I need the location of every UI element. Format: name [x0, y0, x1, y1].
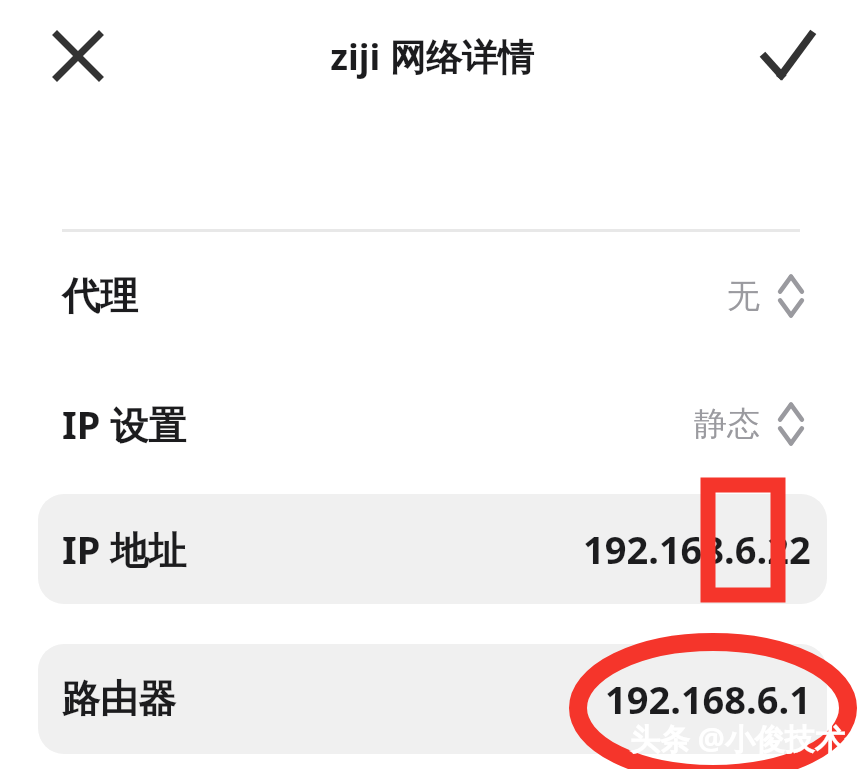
staticText: ziji 网络详情 [330, 32, 534, 81]
staticText: 无 [727, 275, 760, 317]
staticText: IP 地址 [62, 523, 187, 575]
staticText: 192.168.6.1 [605, 673, 811, 725]
button[interactable]: Confirm [754, 22, 822, 90]
staticText: 静态 [694, 403, 760, 445]
staticText: 代理 [62, 272, 138, 320]
button[interactable]: 代理 [0, 232, 864, 360]
staticText: 192.168.6.22 [583, 523, 811, 575]
button[interactable]: 路由器 [38, 644, 827, 754]
button[interactable]: IP 地址 [38, 494, 827, 604]
button[interactable]: Close [44, 22, 112, 90]
staticText: 头条 @小俊技术分享 [630, 718, 864, 759]
staticText: 路由器 [62, 675, 176, 723]
staticText: IP 设置 [62, 398, 187, 450]
button[interactable]: IP 设置 [0, 360, 864, 488]
